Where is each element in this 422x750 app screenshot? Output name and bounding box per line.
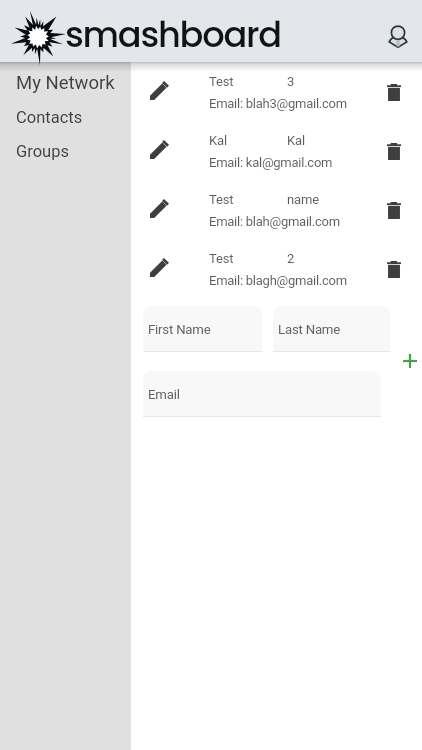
button[interactable]: Edit [131, 121, 187, 180]
button[interactable]: Edit [131, 62, 422, 121]
button[interactable]: Contacts [0, 106, 131, 129]
staticText: Email: kal@gmail.com [209, 155, 333, 170]
button[interactable]: My Network [0, 70, 131, 96]
staticText: Email: blah@gmail.com [209, 214, 340, 229]
button[interactable]: Add contact [394, 345, 422, 377]
button[interactable]: Delete [378, 180, 422, 239]
staticText: Test [209, 192, 287, 207]
staticText: Kal [209, 133, 287, 148]
button[interactable]: Edit [131, 180, 422, 239]
button[interactable]: Last Name [273, 306, 390, 351]
staticText: Test [209, 74, 287, 89]
staticText: Email: blagh@gmail.com [209, 273, 347, 288]
button[interactable]: Delete [378, 62, 422, 121]
button[interactable]: Edit [131, 180, 187, 239]
button[interactable]: Email [143, 371, 381, 416]
button[interactable]: Groups [0, 140, 131, 163]
staticText: Test [209, 251, 287, 266]
button[interactable]: Delete [378, 121, 422, 180]
staticText: My Network [16, 72, 115, 94]
staticText: Last Name [278, 322, 341, 337]
staticText: First Name [148, 322, 211, 337]
button[interactable]: Edit [131, 121, 422, 180]
button[interactable]: Account [376, 14, 420, 58]
staticText: Contacts [16, 108, 83, 127]
staticText: 2 [287, 251, 295, 266]
staticText: name [287, 192, 319, 207]
button[interactable]: Edit [131, 62, 187, 121]
staticText: Groups [16, 142, 69, 161]
staticText: Kal [287, 133, 305, 148]
staticText: Email: blah3@gmail.com [209, 96, 347, 111]
staticText: smashboard [65, 10, 281, 59]
staticText: 3 [287, 74, 295, 89]
button[interactable]: Edit [131, 239, 187, 298]
button[interactable]: First Name [143, 306, 262, 351]
staticText: Email [148, 387, 180, 402]
button[interactable]: Delete [378, 239, 422, 298]
button[interactable]: Edit [131, 239, 422, 298]
